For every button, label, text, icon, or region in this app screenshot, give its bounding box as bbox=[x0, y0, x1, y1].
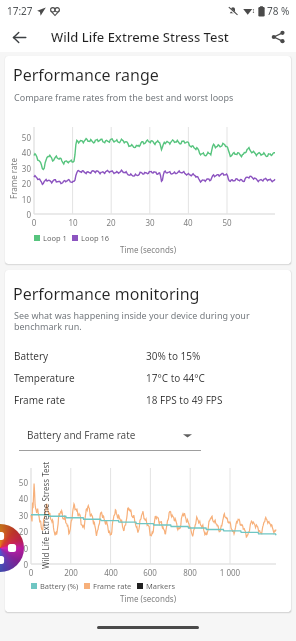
staticText: Performance monitoring bbox=[13, 283, 200, 305]
staticText: 17:27 bbox=[7, 4, 33, 18]
staticText: Frame rate bbox=[93, 581, 132, 591]
staticText: Performance range bbox=[13, 64, 159, 86]
button[interactable]: Share bbox=[264, 23, 292, 51]
staticText: 17°C to 44°C bbox=[146, 371, 205, 385]
staticText: See what was happening inside your devic… bbox=[14, 309, 269, 332]
staticText: 40 bbox=[8, 493, 28, 504]
staticText: Frame rate bbox=[14, 393, 146, 407]
staticText: Markers bbox=[146, 581, 176, 591]
staticText: 10 bbox=[11, 194, 31, 205]
staticText: 10 bbox=[8, 543, 28, 554]
staticText: 0 bbox=[22, 217, 46, 228]
staticText: Battery bbox=[14, 349, 146, 363]
staticText: 400 bbox=[97, 567, 125, 578]
staticText: Wild Life Extreme Stress Test bbox=[51, 28, 229, 46]
staticText: 20 bbox=[11, 178, 31, 189]
staticText: 40 bbox=[176, 217, 200, 228]
staticText: Loop 16 bbox=[81, 233, 110, 243]
staticText: 30 bbox=[138, 217, 162, 228]
staticText: 18 FPS to 49 FPS bbox=[146, 393, 223, 407]
staticText: 50 bbox=[8, 477, 28, 488]
staticText: Temperature bbox=[14, 371, 146, 385]
staticText: 0 bbox=[8, 559, 28, 570]
staticText: 10 bbox=[61, 217, 85, 228]
staticText: Wild Life Extreme Stress Test bbox=[40, 461, 51, 569]
staticText: 30 bbox=[11, 163, 31, 174]
staticText: 600 bbox=[136, 567, 164, 578]
staticText: 20 bbox=[8, 526, 28, 537]
button[interactable]: Battery and Frame rate bbox=[19, 428, 201, 451]
staticText: 200 bbox=[57, 567, 85, 578]
staticText: Battery (%) bbox=[40, 581, 79, 591]
staticText: 0 bbox=[17, 567, 45, 578]
staticText: 30% to 15% bbox=[146, 349, 201, 363]
staticText: Loop 1 bbox=[43, 233, 67, 243]
staticText: Battery and Frame rate bbox=[27, 428, 136, 442]
button[interactable]: Back bbox=[5, 23, 33, 51]
staticText: 30 bbox=[8, 510, 28, 521]
staticText: Frame rate bbox=[8, 158, 19, 199]
staticText: Time (seconds) bbox=[5, 244, 291, 255]
staticText: 1 000 bbox=[216, 567, 244, 578]
staticText: 0 bbox=[11, 209, 31, 220]
staticText: 78 % bbox=[267, 4, 290, 18]
staticText: 50 bbox=[11, 132, 31, 143]
staticText: 40 bbox=[11, 147, 31, 158]
staticText: Time (seconds) bbox=[5, 593, 291, 604]
staticText: 50 bbox=[215, 217, 239, 228]
staticText: Compare frame rates from the best and wo… bbox=[14, 91, 234, 103]
staticText: 800 bbox=[176, 567, 204, 578]
staticText: 20 bbox=[99, 217, 123, 228]
